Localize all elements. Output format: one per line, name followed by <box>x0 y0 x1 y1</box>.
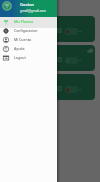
button[interactable]: Weather <box>4 45 95 71</box>
button[interactable]: Profile photo <box>0 0 57 17</box>
button[interactable]: Ayuda <box>0 44 57 53</box>
staticText: Mi Cuenta <box>14 37 32 42</box>
button[interactable]: Logout <box>0 53 57 62</box>
staticText: Configuracion <box>14 28 38 33</box>
button[interactable]: Configuracion <box>0 26 57 35</box>
button[interactable]: Mi Cuenta <box>0 35 57 44</box>
button[interactable] <box>4 16 95 42</box>
button[interactable] <box>4 74 95 100</box>
staticText: Gaston <box>20 2 35 8</box>
staticText: Logout <box>14 55 26 60</box>
other: Weather <box>87 48 94 53</box>
staticText: gmail@gmail.com <box>20 9 47 13</box>
button[interactable]: Mis Plantas <box>0 17 57 26</box>
staticText: Ayuda <box>14 46 25 51</box>
staticText: Mis Plantas <box>14 19 34 24</box>
other: Profile photo <box>2 1 12 11</box>
